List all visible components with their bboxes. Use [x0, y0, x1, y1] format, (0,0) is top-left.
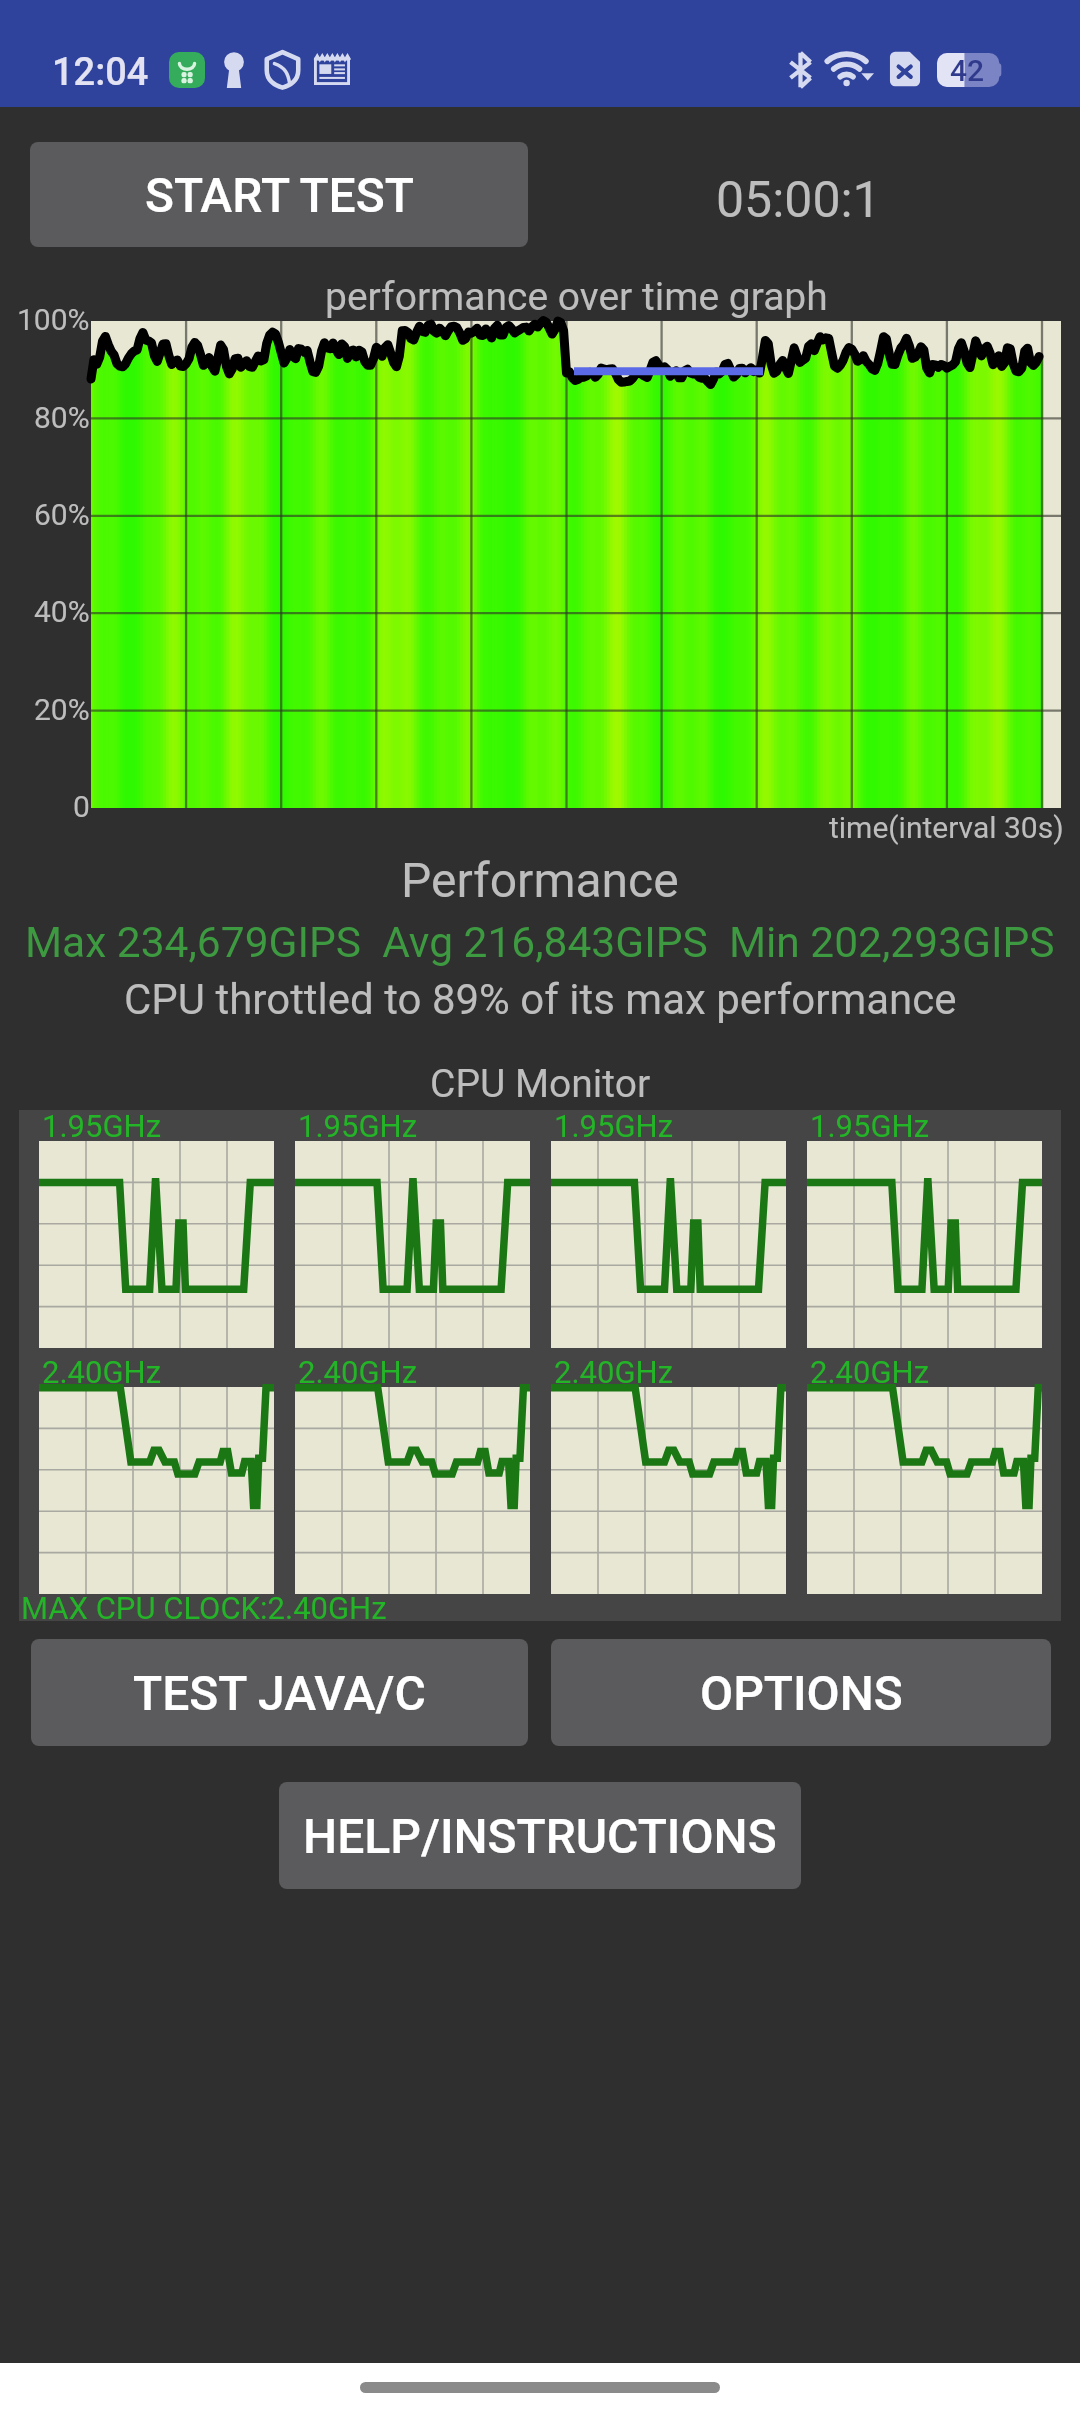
other: Wi-Fi	[827, 50, 876, 88]
staticText: 1.95GHz	[554, 1108, 674, 1144]
staticText: 0	[73, 789, 90, 824]
staticText: 40%	[34, 594, 90, 629]
staticText: 42	[950, 53, 985, 87]
staticText: Performance	[401, 852, 679, 908]
staticText: Max 234,679GIPS Avg 216,843GIPS Min 202,…	[25, 918, 1055, 968]
staticText: 20%	[34, 692, 90, 727]
staticText: time(interval 30s)	[829, 810, 1064, 845]
staticText: performance over time graph	[325, 274, 828, 320]
staticText: 80%	[34, 400, 90, 435]
button[interactable]: HELP/INSTRUCTIONS	[279, 1782, 801, 1889]
staticText: TEST JAVA/C	[133, 1665, 426, 1721]
staticText: OPTIONS	[700, 1665, 903, 1721]
other: Bluetooth	[788, 52, 813, 88]
staticText: 2.40GHz	[42, 1354, 162, 1390]
staticText: HELP/INSTRUCTIONS	[303, 1808, 777, 1864]
staticText: 100%	[17, 302, 90, 337]
staticText: 1.95GHz	[298, 1108, 418, 1144]
other: No SIM card	[889, 51, 921, 88]
staticText: 1.95GHz	[810, 1108, 930, 1144]
button[interactable]: OPTIONS	[551, 1639, 1051, 1746]
staticText: 2.40GHz	[810, 1354, 930, 1390]
staticText: 60%	[34, 497, 90, 532]
other: Battery 42 percent	[937, 53, 1003, 87]
staticText: MAX CPU CLOCK:2.40GHz	[21, 1590, 387, 1626]
staticText: 12:04	[52, 50, 149, 95]
staticText: 2.40GHz	[554, 1354, 674, 1390]
staticText: 1.95GHz	[42, 1108, 162, 1144]
staticText: 2.40GHz	[298, 1354, 418, 1390]
staticText: START TEST	[145, 167, 414, 223]
staticText: CPU Monitor	[430, 1061, 651, 1107]
staticText: 05:00:1	[716, 171, 881, 230]
button[interactable]: START TEST	[30, 142, 528, 247]
staticText: CPU throttled to 89% of its max performa…	[124, 975, 957, 1024]
button[interactable]: TEST JAVA/C	[31, 1639, 528, 1746]
